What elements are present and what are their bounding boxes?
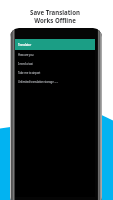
button[interactable]: Translator [15,39,95,50]
button[interactable]: How are you [15,50,95,59]
button[interactable]: Unlimited translation storage ...... [15,77,95,86]
staticText: Unlimited translation storage ...... [18,80,59,84]
staticText: I need a taxi [18,62,33,66]
button[interactable]: Take me to airport [15,68,95,77]
staticText: Works Offline [34,16,76,24]
staticText: Take me to airport [18,71,41,75]
button[interactable]: I need a taxi [15,59,95,68]
staticText: How are you [18,53,34,57]
staticText: Save Translation [30,8,80,16]
staticText: Translator [18,43,32,47]
